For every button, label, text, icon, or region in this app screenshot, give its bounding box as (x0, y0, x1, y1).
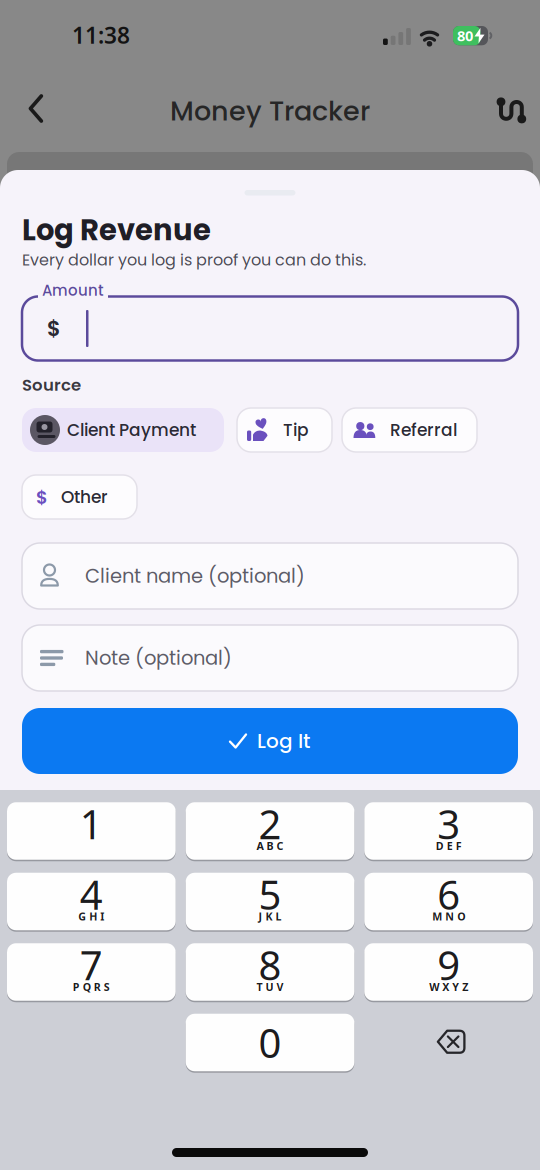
staticText: Every dollar you log is proof you can do… (22, 249, 366, 271)
button[interactable]: 7 (7, 942, 176, 1001)
button[interactable]: 9 (364, 942, 533, 1001)
staticText: 4 (80, 868, 103, 921)
staticText: Client name (optional) (85, 562, 305, 590)
staticText: Log Revenue (22, 210, 211, 250)
staticText: 6 (437, 868, 460, 921)
button[interactable]: 8 (186, 942, 354, 1001)
button[interactable]: $ (22, 475, 137, 519)
staticText: P Q R S (73, 980, 110, 994)
staticText: 80 (457, 26, 473, 45)
staticText (90, 839, 93, 853)
staticText: Note (optional) (85, 644, 232, 672)
staticText: A B C (256, 839, 283, 853)
staticText: G H I (78, 909, 104, 923)
button[interactable]: Transactions (488, 89, 535, 136)
button[interactable]: Delete (364, 1013, 533, 1070)
staticText: W X Y Z (429, 980, 468, 994)
staticText: 1 (80, 797, 103, 850)
button[interactable]: 5 (186, 872, 354, 931)
button[interactable]: 2 (186, 801, 354, 860)
staticText: Client Payment (67, 418, 196, 442)
staticText: Other (61, 485, 108, 509)
staticText: 3 (437, 797, 460, 850)
staticText: 9 (437, 938, 460, 991)
staticText: Money Tracker (170, 92, 370, 130)
staticText: Amount (38, 280, 108, 301)
staticText: T U V (256, 980, 283, 994)
button[interactable]: Note (optional) (22, 625, 518, 691)
staticText: Log It (257, 727, 310, 755)
button[interactable]: Referral (342, 408, 477, 452)
staticText: Source (22, 373, 81, 396)
staticText: 8 (258, 938, 281, 991)
staticText: 2 (258, 797, 281, 850)
button[interactable]: Client name (optional) (22, 543, 518, 609)
button[interactable]: 1 (7, 801, 176, 860)
staticText: J K L (258, 909, 281, 923)
staticText: 11:38 (72, 20, 130, 50)
staticText: D E F (436, 839, 462, 853)
staticText: Tip (283, 418, 309, 442)
button[interactable]: 3 (364, 801, 533, 860)
staticText: $ (47, 314, 61, 343)
staticText: 7 (80, 938, 103, 991)
staticText: Referral (390, 418, 457, 442)
staticText: M N O (432, 909, 465, 923)
button[interactable]: 0 (186, 1013, 354, 1072)
staticText: 5 (258, 868, 281, 921)
button[interactable]: Back (17, 84, 55, 133)
staticText: $ (36, 484, 48, 510)
button[interactable]: Log It (22, 708, 518, 774)
button[interactable]: 4 (7, 872, 176, 931)
button[interactable]: Tip (237, 408, 332, 452)
staticText: 0 (258, 1016, 281, 1069)
button[interactable]: Client Payment (22, 408, 224, 452)
button[interactable]: 6 (364, 872, 533, 931)
button[interactable]: Amount (22, 280, 518, 355)
